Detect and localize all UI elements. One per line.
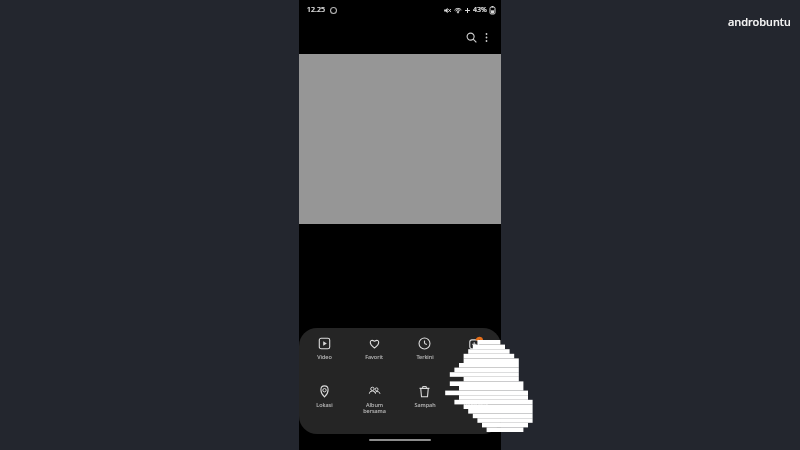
button[interactable]: Sampah <box>399 385 450 427</box>
staticText: Video <box>317 353 332 360</box>
button[interactable]: Lokasi <box>299 385 349 427</box>
button[interactable]: Album bersama <box>349 385 399 427</box>
button[interactable]: Pengatur <box>450 385 501 427</box>
staticText: Pengatur <box>464 401 488 408</box>
button[interactable]: Search <box>460 26 482 48</box>
button[interactable]: Terkini <box>399 337 450 379</box>
button[interactable]: Video <box>299 337 349 379</box>
staticText: Lokasi <box>316 401 333 408</box>
staticText: Album bersama <box>363 401 386 415</box>
staticText: Favorit <box>365 353 383 360</box>
button[interactable]: More options <box>475 26 497 48</box>
button[interactable]: Favorit <box>349 337 399 379</box>
staticText: androbuntu <box>728 14 791 29</box>
button[interactable] <box>450 337 501 379</box>
staticText: 43% <box>473 5 487 15</box>
staticText: 12.25 <box>307 5 325 15</box>
staticText: Terkini <box>416 353 434 360</box>
staticText: Sampah <box>414 401 436 408</box>
